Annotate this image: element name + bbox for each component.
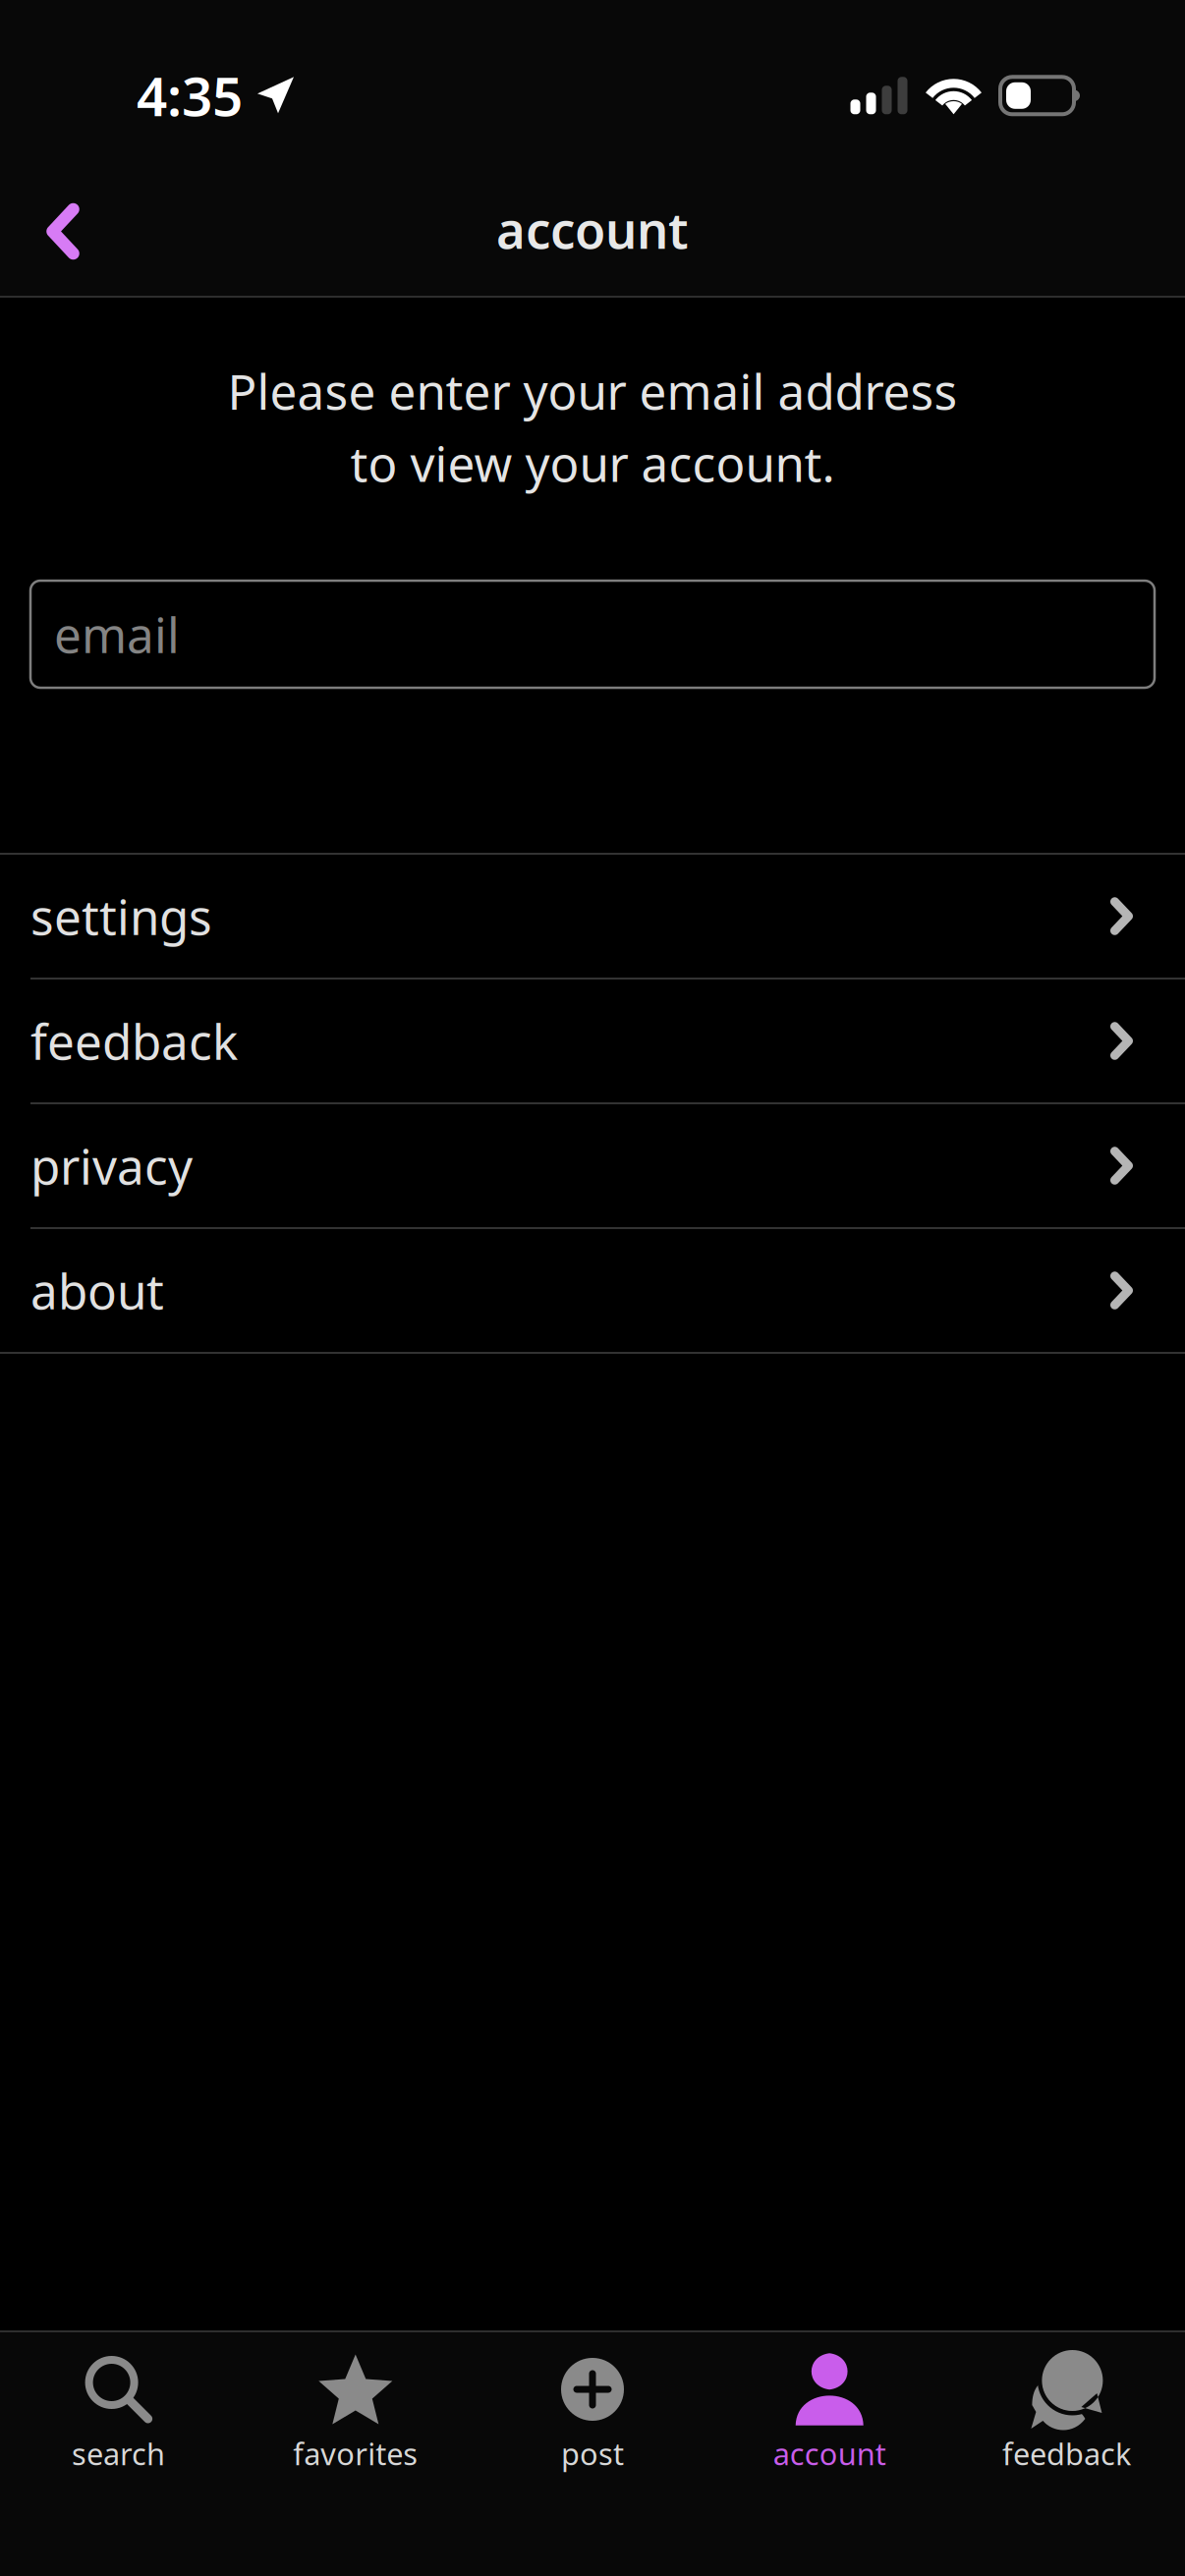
- button[interactable]: favorites: [237, 2332, 474, 2495]
- staticText: about: [30, 1258, 164, 1323]
- button[interactable]: Back: [0, 183, 126, 291]
- button[interactable]: post: [474, 2332, 711, 2495]
- staticText: feedback: [1002, 2434, 1131, 2474]
- button[interactable]: email: [0, 495, 1185, 688]
- staticText: Please enter your email address: [227, 359, 958, 423]
- button[interactable]: about: [0, 1229, 1185, 1352]
- button[interactable]: feedback: [948, 2332, 1185, 2495]
- button[interactable]: privacy: [0, 1104, 1185, 1227]
- staticText: email: [54, 602, 180, 666]
- button[interactable]: settings: [0, 855, 1185, 978]
- staticText: privacy: [30, 1134, 193, 1198]
- staticText: account: [773, 2434, 886, 2474]
- staticText: feedback: [30, 1009, 238, 1073]
- staticText: settings: [30, 884, 212, 948]
- staticText: search: [72, 2434, 165, 2474]
- button[interactable]: feedback: [0, 980, 1185, 1102]
- staticText: post: [561, 2434, 624, 2474]
- button[interactable]: search: [0, 2332, 237, 2495]
- staticText: to view your account.: [350, 431, 835, 495]
- button[interactable]: account: [711, 2332, 948, 2495]
- staticText: 4:35: [137, 60, 243, 131]
- staticText: account: [496, 196, 689, 263]
- staticText: favorites: [293, 2434, 418, 2474]
